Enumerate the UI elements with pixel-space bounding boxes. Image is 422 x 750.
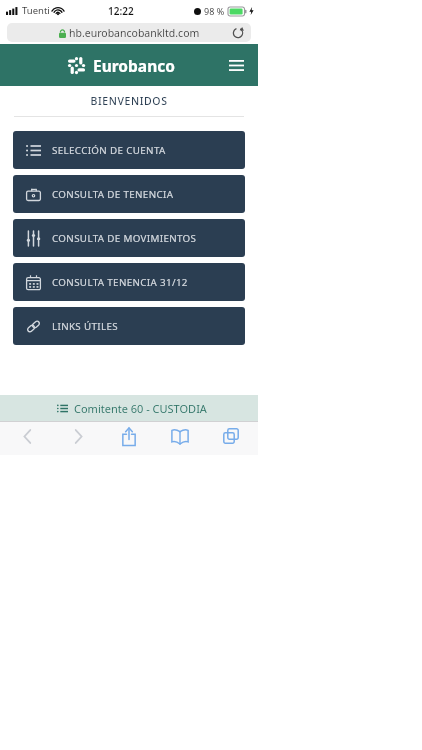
button[interactable]: CONSULTA DE TENENCIA — [13, 175, 245, 213]
staticText: 98 % — [204, 5, 225, 17]
staticText: Eurobanco — [93, 55, 175, 76]
staticText: CONSULTA DE TENENCIA — [52, 188, 174, 201]
button[interactable]: CONSULTA TENENCIA 31/12 — [13, 263, 245, 301]
staticText: Tuenti — [22, 4, 50, 17]
button[interactable]: Comitente 60 - CUSTODIA — [0, 395, 258, 421]
button[interactable]: Menu — [224, 53, 248, 77]
staticText: LINKS ÚTILES — [52, 320, 118, 333]
button[interactable]: Share — [115, 422, 143, 450]
button[interactable]: LINKS ÚTILES — [13, 307, 245, 345]
staticText: hb.eurobancobankltd.com — [69, 26, 200, 40]
button[interactable]: Bookmarks — [166, 422, 194, 450]
staticText: SELECCIÓN DE CUENTA — [52, 144, 166, 157]
button[interactable]: Forward — [64, 422, 92, 450]
staticText: 12:22 — [108, 4, 134, 18]
button[interactable]: Reload — [231, 26, 245, 40]
staticText: CONSULTA TENENCIA 31/12 — [52, 276, 188, 289]
staticText: CONSULTA DE MOVIMIENTOS — [52, 232, 197, 245]
button[interactable]: Back — [13, 422, 41, 450]
button[interactable]: CONSULTA DE MOVIMIENTOS — [13, 219, 245, 257]
staticText: BIENVENIDOS — [0, 94, 258, 108]
button[interactable]: Tabs — [217, 422, 245, 450]
button[interactable]: SELECCIÓN DE CUENTA — [13, 131, 245, 169]
staticText: Comitente 60 - CUSTODIA — [74, 401, 207, 416]
button[interactable]: hb.eurobancobankltd.com — [7, 23, 251, 42]
